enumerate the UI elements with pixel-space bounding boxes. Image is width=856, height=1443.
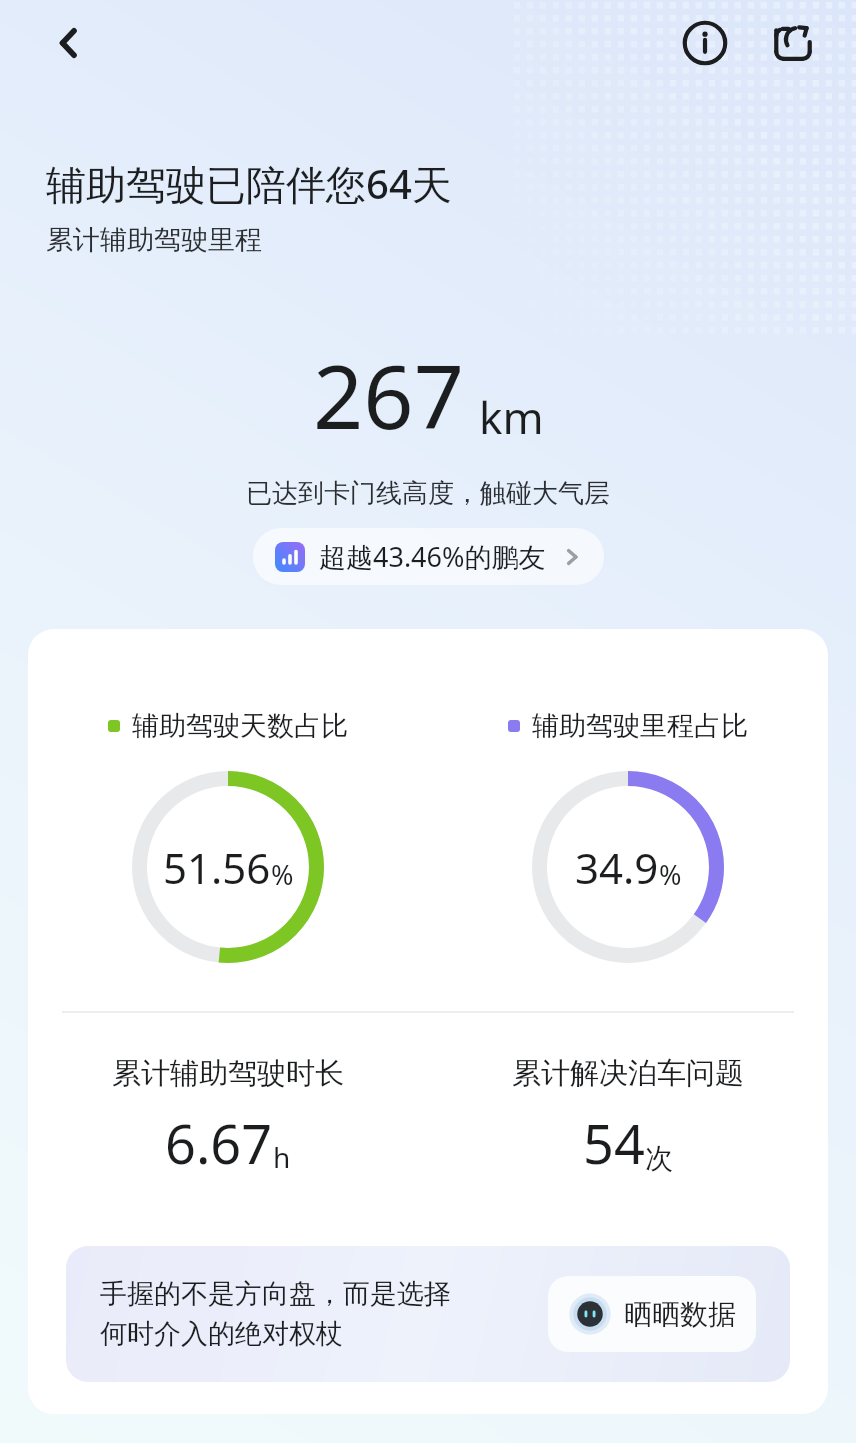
staticText: 次 [645,1141,673,1176]
button[interactable]: 超越43.46%的鹏友 [253,528,604,585]
staticText: 6.67 [165,1106,273,1180]
staticText: % [659,856,682,893]
staticText: 何时介入的绝对权杖 [100,1317,343,1351]
staticText: % [271,856,294,893]
staticText: 晒晒数据 [624,1297,736,1332]
staticText: 34.9 [575,839,659,896]
staticText: h [273,1138,291,1176]
button[interactable]: 晒晒数据 [548,1276,756,1352]
button[interactable]: Back [34,7,106,79]
staticText: 累计解决泊车问题 [512,1055,744,1092]
staticText: km [479,387,544,447]
staticText: 辅助驾驶已陪伴您64天 [46,156,452,211]
button[interactable]: Share [756,6,830,80]
staticText: 累计辅助驾驶里程 [46,223,262,257]
staticText: 已达到卡门线高度，触碰大气层 [246,477,610,510]
staticText: 累计辅助驾驶时长 [112,1055,344,1092]
button[interactable]: Info [668,6,742,80]
staticText: 54 [583,1106,645,1180]
staticText: 辅助驾驶天数占比 [132,709,348,743]
staticText: 267 [313,335,465,455]
staticText: 手握的不是方向盘，而是选择 [100,1277,451,1311]
staticText: 51.56 [163,839,271,896]
staticText: 超越43.46%的鹏友 [319,538,546,575]
staticText: 辅助驾驶里程占比 [532,709,748,743]
